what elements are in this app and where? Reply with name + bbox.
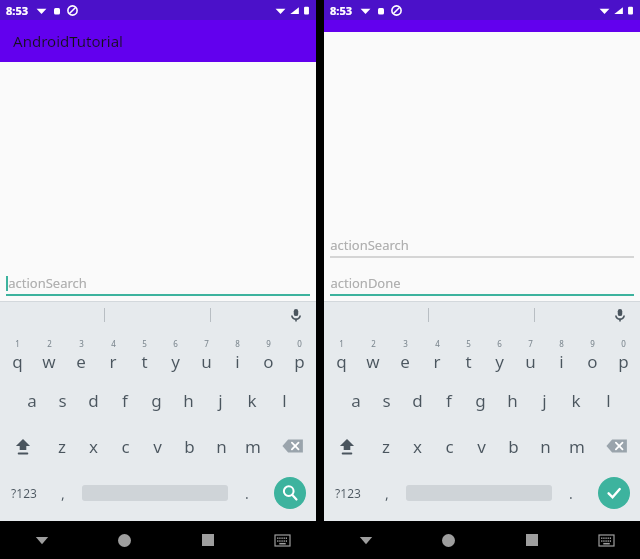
button[interactable]: k: [560, 377, 592, 423]
staticText: actionDone: [330, 274, 401, 292]
button[interactable]: actionSearch: [0, 272, 316, 296]
staticText: 5: [466, 338, 471, 349]
button[interactable]: actionSearch: [324, 234, 640, 258]
button[interactable]: s: [47, 377, 78, 423]
button[interactable]: Recents: [166, 521, 249, 559]
button[interactable]: l: [268, 377, 300, 423]
staticText: AndroidTutorial: [13, 31, 123, 51]
staticText: 9: [266, 338, 271, 349]
button[interactable]: Space: [403, 469, 555, 517]
button[interactable]: 5: [453, 329, 484, 377]
button[interactable]: n: [529, 423, 561, 469]
button[interactable]: 1: [1, 329, 33, 377]
button[interactable]: c: [109, 423, 141, 469]
button[interactable]: 6: [484, 329, 515, 377]
button[interactable]: Voice input: [610, 305, 630, 325]
button[interactable]: Switch keyboard: [573, 521, 640, 559]
staticText: b: [184, 435, 195, 458]
staticText: ?123: [335, 485, 361, 501]
staticText: 6: [497, 338, 502, 349]
button[interactable]: Switch keyboard: [249, 521, 316, 559]
button[interactable]: Space: [79, 469, 231, 517]
button[interactable]: c: [433, 423, 465, 469]
button[interactable]: s: [371, 377, 402, 423]
staticText: 3: [403, 338, 408, 349]
button[interactable]: ?123: [0, 469, 47, 517]
staticText: 1: [15, 338, 20, 349]
button[interactable]: f: [433, 377, 464, 423]
button[interactable]: g: [464, 377, 496, 423]
button[interactable]: b: [497, 423, 529, 469]
staticText: 0: [297, 338, 302, 349]
button[interactable]: actionDone: [324, 272, 640, 296]
button[interactable]: 3: [65, 329, 97, 377]
button[interactable]: m: [237, 423, 269, 469]
button[interactable]: h: [496, 377, 528, 423]
button[interactable]: Back: [0, 521, 83, 559]
button[interactable]: Shift: [324, 423, 370, 469]
button[interactable]: Search: [263, 469, 316, 517]
button[interactable]: 2: [33, 329, 65, 377]
staticText: z: [382, 435, 390, 458]
button[interactable]: m: [561, 423, 593, 469]
button[interactable]: j: [204, 377, 236, 423]
button[interactable]: .: [555, 469, 587, 517]
button[interactable]: 9: [577, 329, 608, 377]
button[interactable]: Home: [407, 521, 490, 559]
button[interactable]: Back: [324, 521, 407, 559]
button[interactable]: 8: [546, 329, 577, 377]
button[interactable]: f: [109, 377, 140, 423]
button[interactable]: .: [231, 469, 263, 517]
button[interactable]: 0: [608, 329, 639, 377]
button[interactable]: 9: [253, 329, 284, 377]
button[interactable]: Backspace: [593, 423, 640, 469]
staticText: s: [382, 389, 391, 412]
button[interactable]: 4: [421, 329, 453, 377]
button[interactable]: l: [592, 377, 624, 423]
button[interactable]: ,: [371, 469, 403, 517]
button[interactable]: g: [140, 377, 172, 423]
button[interactable]: ,: [47, 469, 79, 517]
button[interactable]: x: [401, 423, 433, 469]
button[interactable]: 7: [515, 329, 546, 377]
button[interactable]: 4: [97, 329, 129, 377]
staticText: f: [446, 389, 452, 412]
button[interactable]: d: [78, 377, 109, 423]
button[interactable]: Shift: [0, 423, 46, 469]
staticText: 7: [204, 338, 209, 349]
button[interactable]: n: [205, 423, 237, 469]
button[interactable]: 5: [129, 329, 160, 377]
button[interactable]: d: [402, 377, 433, 423]
button[interactable]: Done: [587, 469, 640, 517]
button[interactable]: 1: [325, 329, 357, 377]
staticText: a: [27, 389, 37, 412]
button[interactable]: ?123: [324, 469, 371, 517]
staticText: b: [508, 435, 519, 458]
button[interactable]: v: [465, 423, 497, 469]
button[interactable]: 8: [222, 329, 253, 377]
button[interactable]: v: [141, 423, 173, 469]
button[interactable]: 3: [389, 329, 421, 377]
staticText: actionSearch: [330, 236, 409, 254]
button[interactable]: b: [173, 423, 205, 469]
button[interactable]: j: [528, 377, 560, 423]
button[interactable]: Voice input: [286, 305, 306, 325]
button[interactable]: k: [236, 377, 268, 423]
staticText: 2: [47, 338, 52, 349]
button[interactable]: 6: [160, 329, 191, 377]
button[interactable]: Recents: [490, 521, 573, 559]
button[interactable]: z: [370, 423, 401, 469]
button[interactable]: 7: [191, 329, 222, 377]
button[interactable]: z: [46, 423, 77, 469]
button[interactable]: 2: [357, 329, 389, 377]
button[interactable]: Home: [83, 521, 166, 559]
staticText: m: [569, 435, 585, 458]
button[interactable]: Backspace: [269, 423, 316, 469]
button[interactable]: h: [172, 377, 204, 423]
button[interactable]: a: [340, 377, 371, 423]
staticText: j: [218, 389, 223, 412]
button[interactable]: 0: [284, 329, 315, 377]
button[interactable]: x: [77, 423, 109, 469]
button[interactable]: a: [16, 377, 47, 423]
staticText: 5: [142, 338, 147, 349]
